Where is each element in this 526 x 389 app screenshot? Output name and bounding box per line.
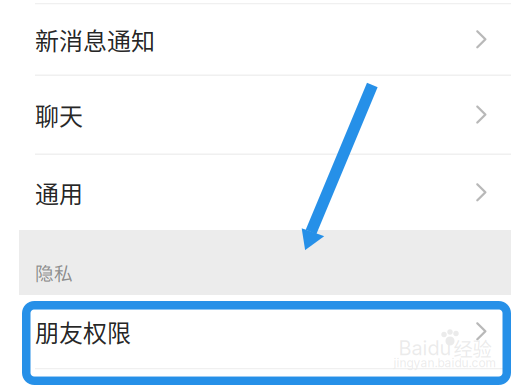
- staticText: 朋友权限: [35, 314, 131, 349]
- staticText: Baidu: [398, 336, 451, 360]
- button[interactable]: 通用: [19, 155, 511, 230]
- staticText: 经验: [453, 334, 491, 362]
- staticText: jingyan.baidu.com: [393, 356, 496, 370]
- button[interactable]: 新消息通知: [19, 4, 511, 74]
- staticText: 通用: [35, 175, 83, 210]
- staticText: 聊天: [35, 97, 83, 132]
- staticText: 新消息通知: [35, 22, 155, 57]
- button[interactable]: 聊天: [19, 76, 511, 153]
- button[interactable]: 朋友权限: [19, 295, 511, 368]
- staticText: 隐私: [35, 259, 73, 286]
